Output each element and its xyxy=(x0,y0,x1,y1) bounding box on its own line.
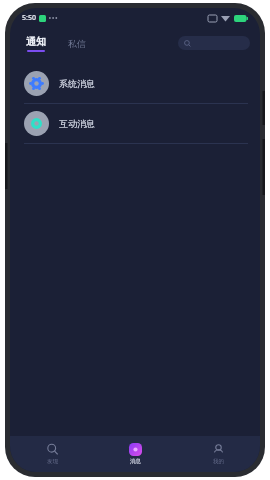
staticText: 发现 xyxy=(47,458,58,465)
staticText: 消息 xyxy=(130,458,141,465)
button[interactable]: 消息 xyxy=(94,436,177,472)
button[interactable]: 互动消息 xyxy=(10,104,260,144)
button[interactable]: 私信 xyxy=(66,35,88,52)
staticText: 系统消息 xyxy=(59,78,95,89)
button[interactable]: 系统消息 xyxy=(10,64,260,104)
staticText: 私信 xyxy=(68,38,86,49)
staticText: 互动消息 xyxy=(59,118,95,129)
staticText: 通知 xyxy=(26,35,46,48)
staticText: 5:50 xyxy=(22,13,36,23)
button[interactable]: 发现 xyxy=(10,436,94,472)
staticText: 我的 xyxy=(213,458,224,465)
button[interactable]: 通知 xyxy=(24,35,48,52)
button[interactable]: 我的 xyxy=(177,436,260,472)
button[interactable]: Search xyxy=(178,36,250,50)
